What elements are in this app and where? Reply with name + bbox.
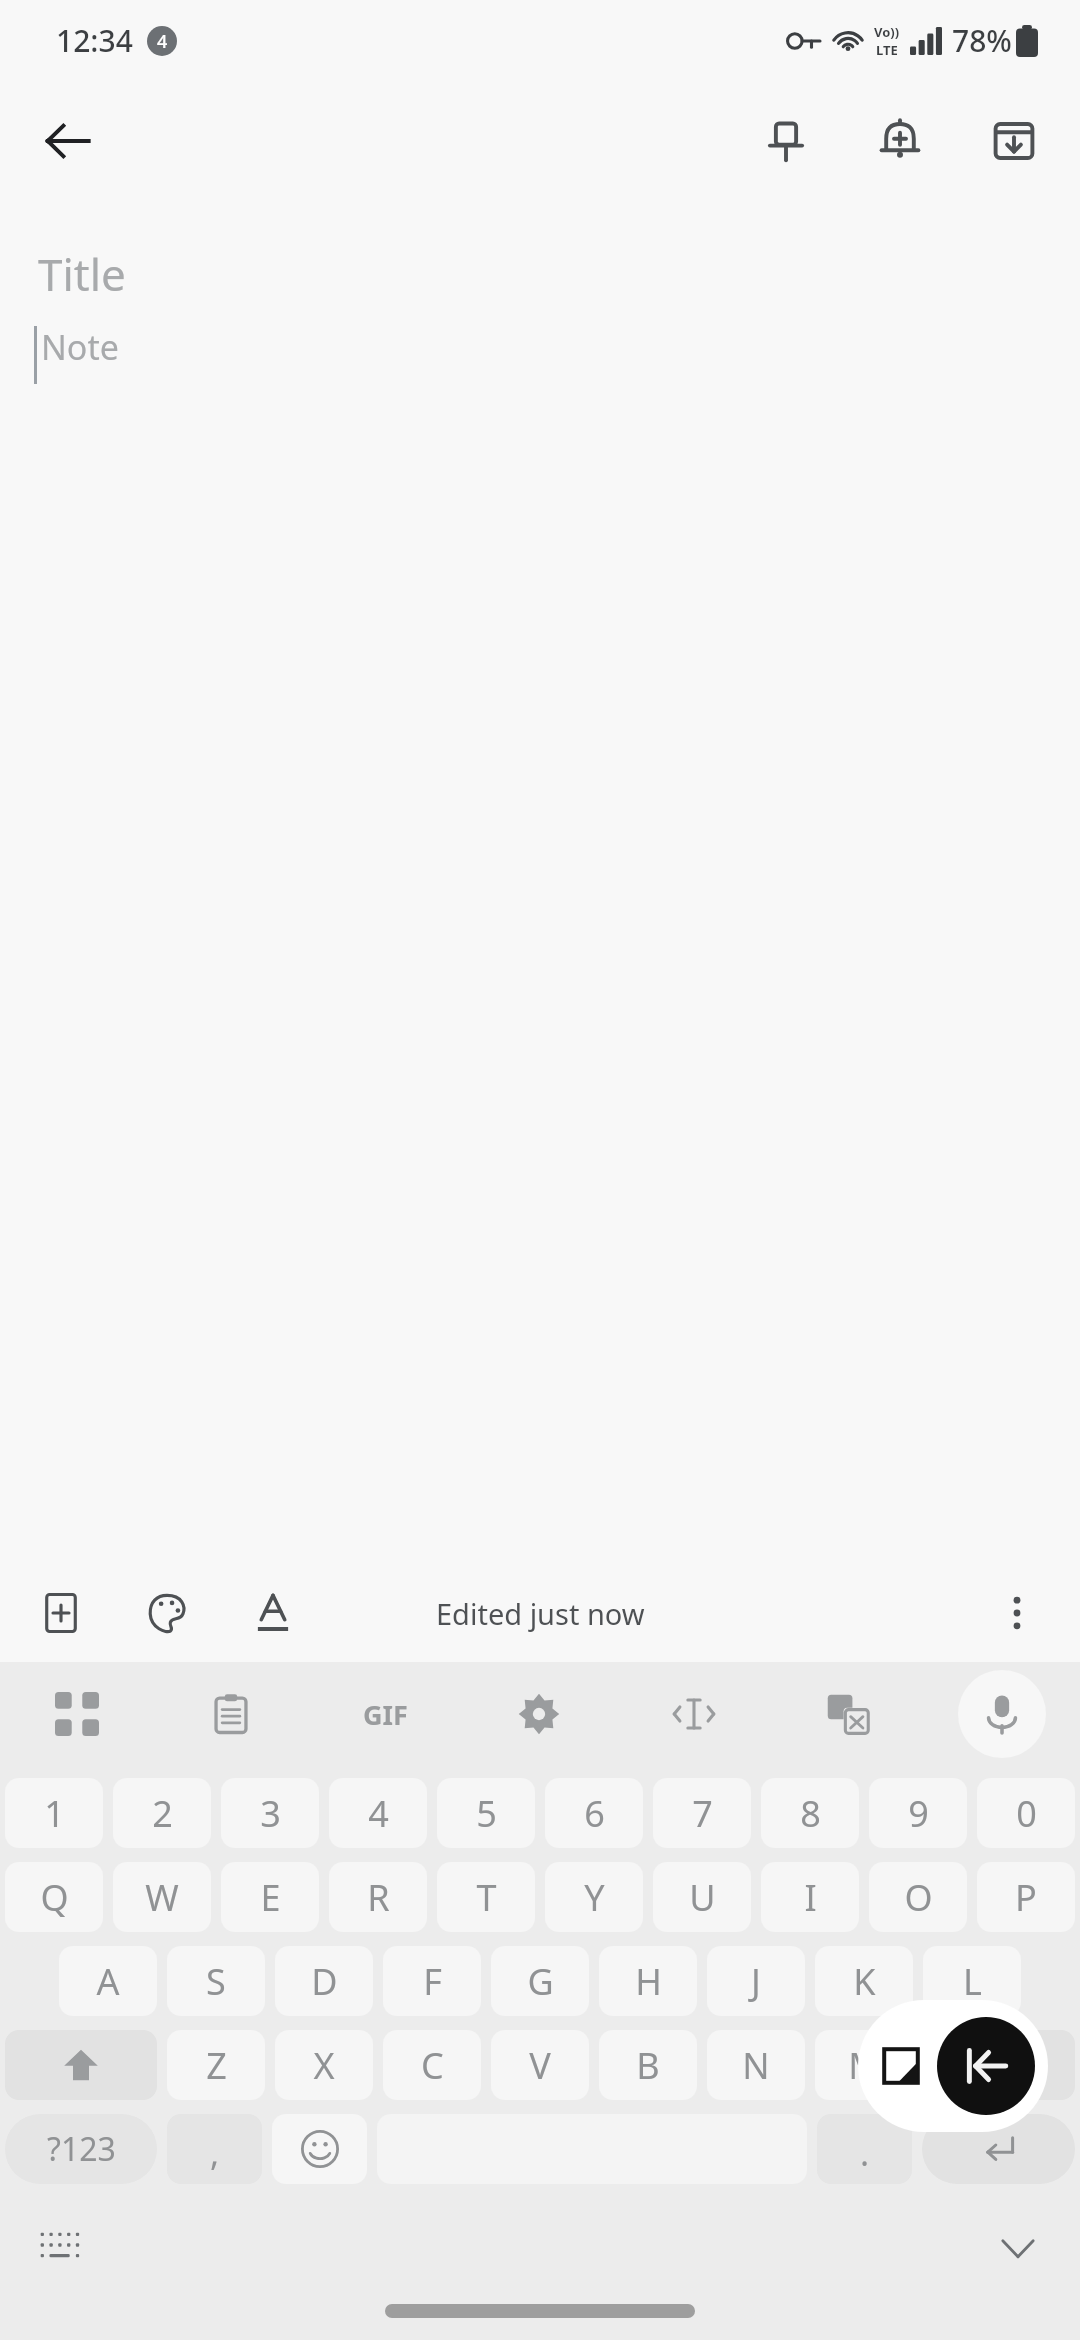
button[interactable]: G: [491, 1946, 589, 2016]
button[interactable]: B: [599, 2030, 697, 2100]
staticText: 4: [157, 29, 168, 54]
staticText: D: [311, 1957, 338, 2006]
button[interactable]: 2: [113, 1778, 211, 1848]
button[interactable]: 9: [869, 1778, 967, 1848]
button[interactable]: Emoji: [272, 2114, 367, 2184]
button[interactable]: Back: [20, 93, 116, 189]
staticText: LTE: [876, 41, 898, 59]
staticText: ?123: [47, 2127, 116, 2171]
button[interactable]: Translate: [771, 1662, 925, 1766]
button[interactable]: F: [383, 1946, 481, 2016]
button[interactable]: V: [491, 2030, 589, 2100]
staticText: T: [476, 1873, 497, 1922]
button[interactable]: Archive: [968, 95, 1060, 187]
staticText: 5: [476, 1789, 497, 1838]
button[interactable]: Z: [167, 2030, 265, 2100]
button[interactable]: 3: [221, 1778, 319, 1848]
button[interactable]: Q: [5, 1862, 103, 1932]
button[interactable]: Formatting: [230, 1570, 316, 1656]
staticText: C: [421, 2041, 444, 2090]
button[interactable]: C: [383, 2030, 481, 2100]
button[interactable]: X: [275, 2030, 373, 2100]
button[interactable]: J: [707, 1946, 805, 2016]
button[interactable]: Title: [38, 244, 1080, 304]
button[interactable]: 5: [437, 1778, 535, 1848]
staticText: I: [804, 1873, 817, 1922]
button[interactable]: More options: [974, 1570, 1060, 1656]
button[interactable]: Add: [18, 1570, 104, 1656]
button[interactable]: W: [113, 1862, 211, 1932]
button[interactable]: Reminder: [854, 95, 946, 187]
staticText: W: [145, 1873, 179, 1922]
staticText: U: [689, 1873, 716, 1922]
button[interactable]: Enter: [922, 2114, 1075, 2184]
button[interactable]: Resize: [871, 2036, 931, 2096]
button[interactable]: 7: [653, 1778, 751, 1848]
button[interactable]: GIF: [308, 1662, 462, 1766]
button[interactable]: Y: [545, 1862, 643, 1932]
button[interactable]: T: [437, 1862, 535, 1932]
button[interactable]: ,: [167, 2114, 262, 2184]
staticText: 78%: [952, 20, 1012, 61]
button[interactable]: ?123: [5, 2114, 157, 2184]
staticText: ,: [210, 2130, 220, 2176]
staticText: O: [904, 1873, 933, 1922]
button[interactable]: Keyboard modes: [0, 1662, 154, 1766]
staticText: 8: [800, 1789, 821, 1838]
staticText: 9: [908, 1789, 929, 1838]
button[interactable]: Clipboard: [154, 1662, 308, 1766]
button[interactable]: 1: [5, 1778, 103, 1848]
staticText: 12:34: [56, 20, 133, 61]
button[interactable]: L: [923, 1946, 1021, 2016]
staticText: J: [751, 1957, 761, 2006]
button[interactable]: M: [815, 2030, 913, 2100]
button[interactable]: E: [221, 1862, 319, 1932]
staticText: L: [963, 1957, 982, 2006]
button[interactable]: Voice input: [925, 1662, 1079, 1766]
staticText: Edited just now: [436, 1594, 645, 1633]
button[interactable]: O: [869, 1862, 967, 1932]
button[interactable]: N: [707, 2030, 805, 2100]
button[interactable]: U: [653, 1862, 751, 1932]
staticText: B: [636, 2041, 660, 2090]
button[interactable]: 6: [545, 1778, 643, 1848]
staticText: .: [860, 2130, 870, 2176]
staticText: 1: [44, 1789, 65, 1838]
button[interactable]: I: [761, 1862, 859, 1932]
staticText: X: [313, 2041, 335, 2090]
button[interactable]: Shift: [5, 2030, 157, 2100]
button[interactable]: Back: [937, 2017, 1035, 2115]
button[interactable]: .: [817, 2114, 912, 2184]
button[interactable]: Hide keyboard: [980, 2210, 1056, 2286]
button[interactable]: K: [815, 1946, 913, 2016]
staticText: GIF: [363, 1696, 408, 1733]
button[interactable]: S: [167, 1946, 265, 2016]
button[interactable]: H: [599, 1946, 697, 2016]
button[interactable]: A: [59, 1946, 157, 2016]
button[interactable]: 8: [761, 1778, 859, 1848]
staticText: F: [423, 1957, 442, 2006]
button[interactable]: Cursor control: [617, 1662, 771, 1766]
staticText: Vo)): [874, 23, 900, 41]
staticText: 4: [368, 1789, 389, 1838]
button[interactable]: Pin: [740, 95, 832, 187]
staticText: 0: [1016, 1789, 1037, 1838]
staticText: Note: [41, 324, 119, 370]
staticText: G: [527, 1957, 554, 2006]
staticText: R: [367, 1873, 390, 1922]
staticText: 7: [692, 1789, 713, 1838]
staticText: N: [742, 2041, 770, 2090]
button[interactable]: Settings: [462, 1662, 616, 1766]
staticText: K: [853, 1957, 876, 2006]
button[interactable]: Note: [34, 324, 1080, 384]
button[interactable]: D: [275, 1946, 373, 2016]
button[interactable]: Backspace: [923, 2030, 1075, 2100]
button[interactable]: P: [977, 1862, 1075, 1932]
staticText: H: [635, 1957, 662, 2006]
button[interactable]: 4: [329, 1778, 427, 1848]
button[interactable]: Background options: [124, 1570, 210, 1656]
button[interactable]: R: [329, 1862, 427, 1932]
button[interactable]: 0: [977, 1778, 1075, 1848]
button[interactable]: Change keyboard: [24, 2210, 100, 2286]
